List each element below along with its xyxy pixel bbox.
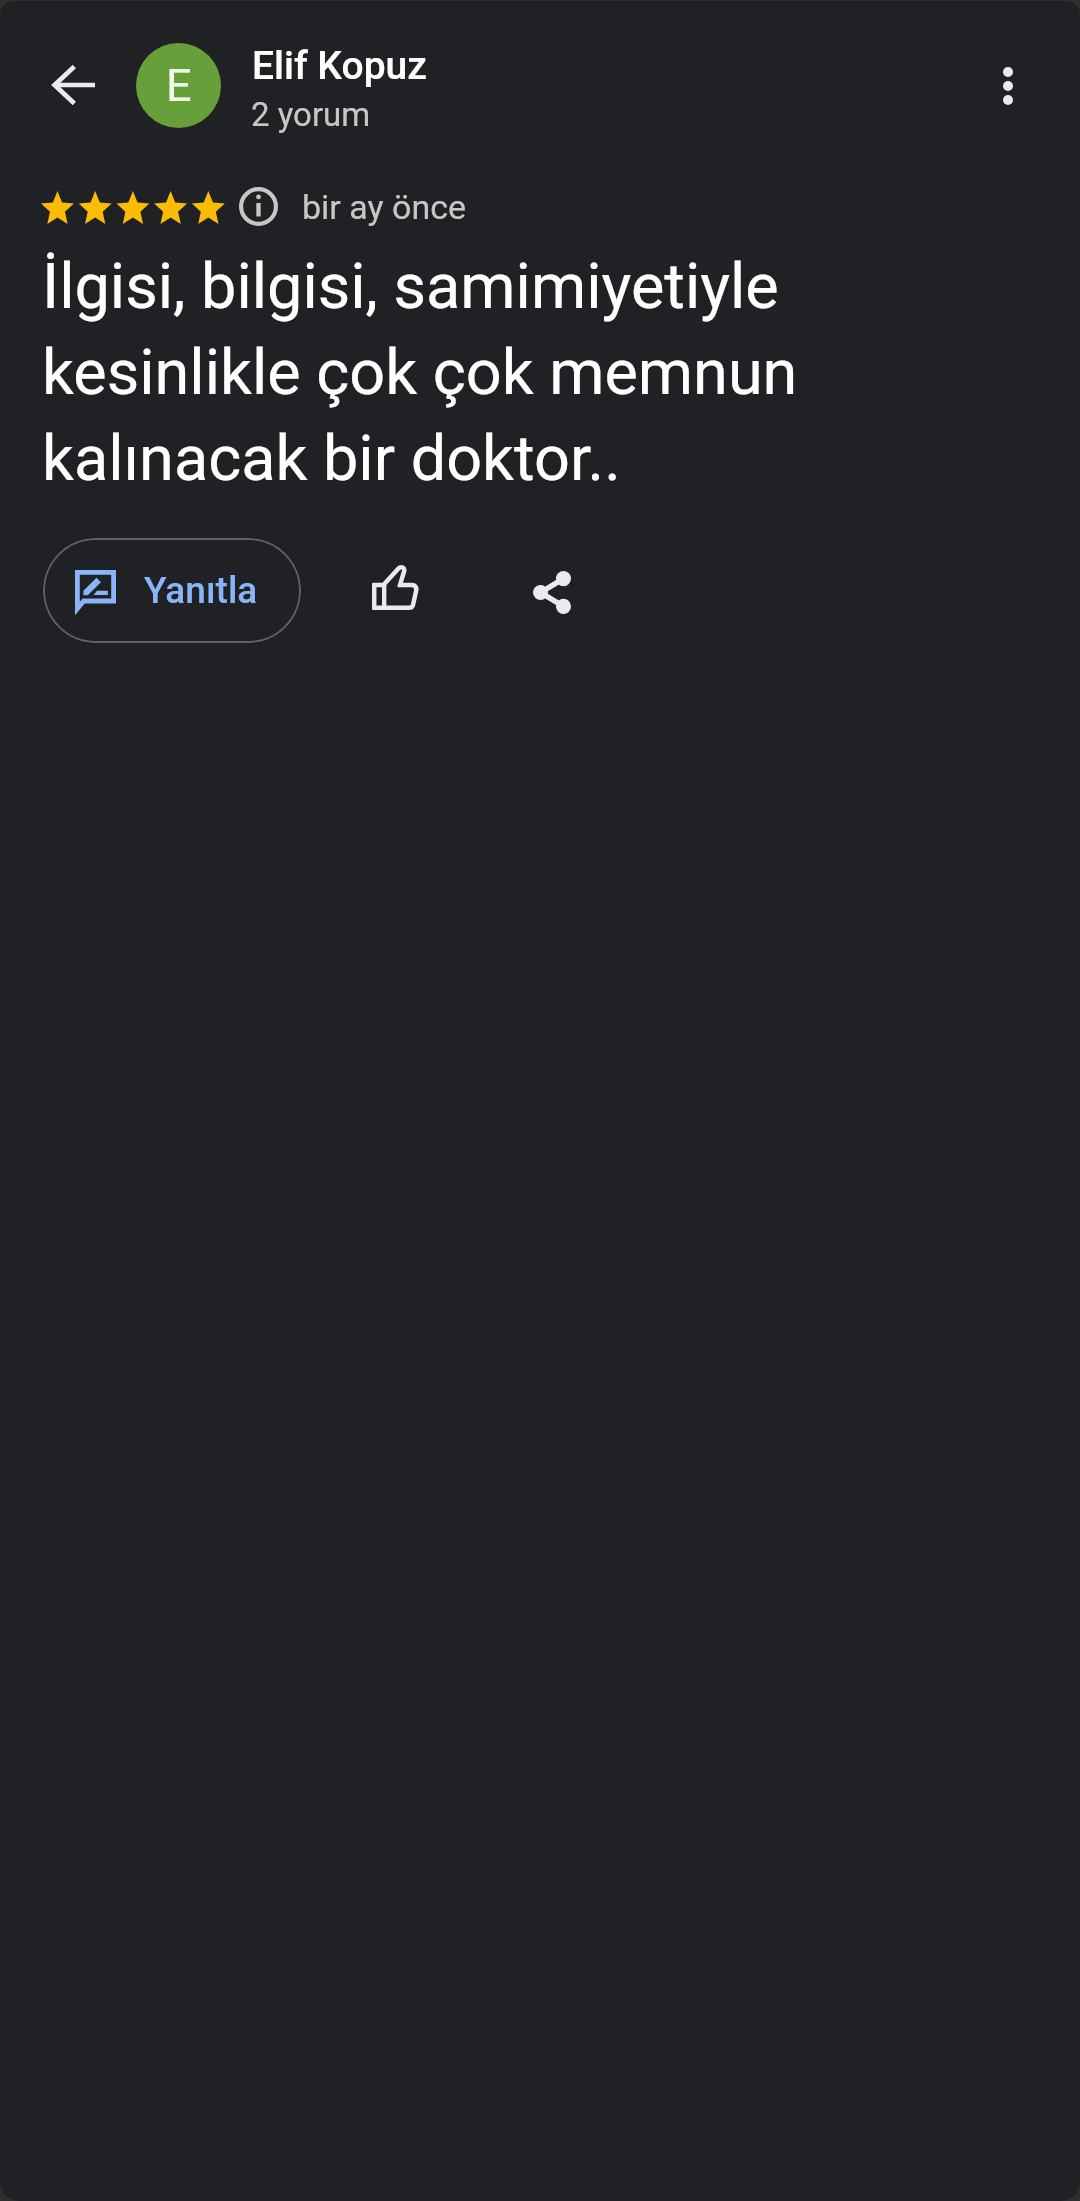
button[interactable]: More options	[964, 42, 1051, 129]
staticText: E	[166, 59, 192, 112]
staticText: Yanıtla	[144, 569, 258, 612]
button[interactable]: Back	[30, 41, 117, 128]
button[interactable]: Profile photo	[136, 43, 221, 128]
staticText: Elif Kopuz	[252, 43, 427, 89]
staticText: bir ay önce	[302, 187, 467, 227]
button[interactable]: Information	[218, 166, 298, 246]
button[interactable]: Yanıtla	[43, 538, 301, 643]
staticText: İlgisi, bilgisi, samimiyetiyle kesinlikl…	[42, 240, 862, 498]
button[interactable]: Like	[351, 543, 439, 631]
staticText: 2 yorum	[251, 95, 371, 134]
button[interactable]: Share	[508, 548, 596, 636]
